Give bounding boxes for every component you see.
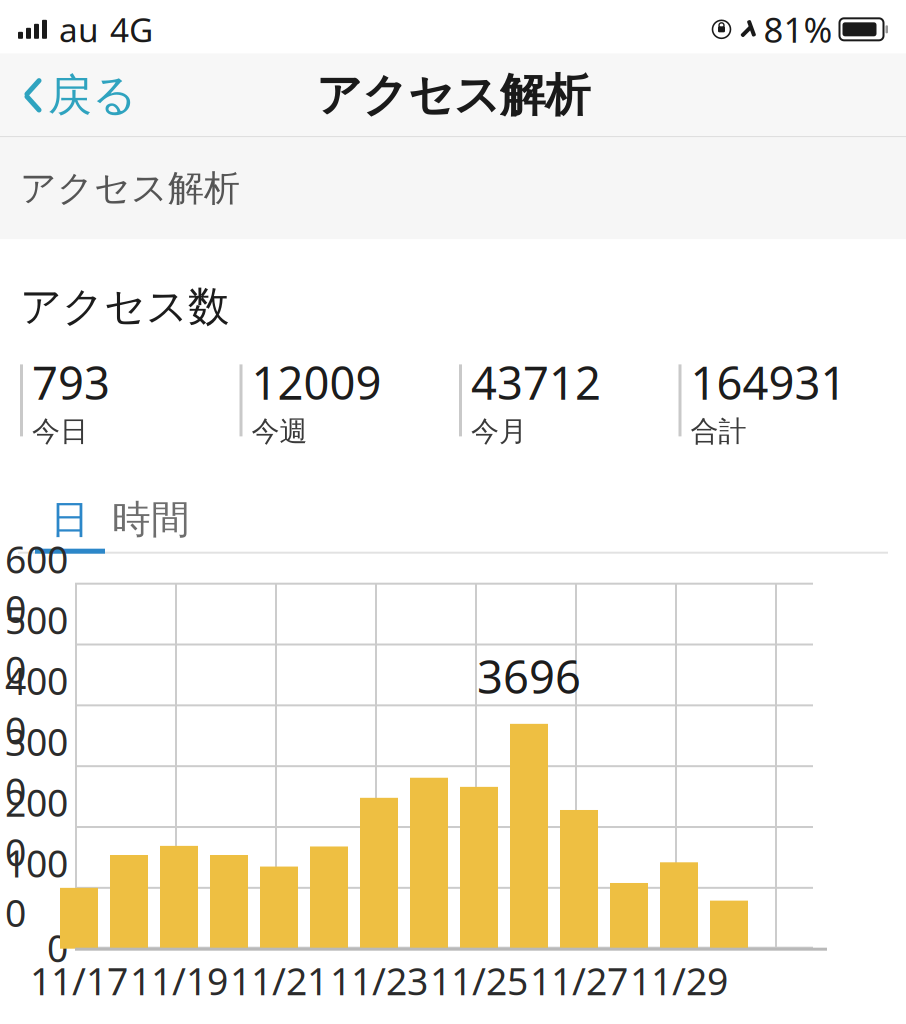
staticText: アクセス解析 — [316, 67, 590, 123]
staticText: 164931 — [690, 352, 846, 412]
staticText: 11/19 — [130, 956, 228, 1005]
staticText: 5000 — [5, 595, 68, 694]
staticText: 戻る — [48, 68, 137, 122]
staticText: 日 — [50, 496, 89, 543]
staticText: 今日 — [32, 414, 88, 449]
staticText: 6000 — [5, 534, 68, 633]
staticText: 11/23 — [330, 956, 428, 1005]
staticText: 12009 — [251, 352, 381, 412]
button[interactable]: 戻る — [0, 53, 151, 137]
staticText: 4000 — [5, 656, 68, 755]
staticText: 時間 — [112, 496, 190, 543]
staticText: 4G — [110, 7, 153, 51]
button[interactable]: 日 — [35, 491, 105, 549]
staticText: 今週 — [251, 414, 307, 449]
staticText: 11/17 — [30, 956, 128, 1005]
staticText: 3696 — [477, 646, 581, 706]
staticText: 今月 — [471, 414, 527, 449]
staticText: 11/25 — [430, 956, 528, 1005]
staticText: 0 — [47, 923, 68, 972]
staticText: 2000 — [5, 777, 68, 877]
staticText: アクセス解析 — [20, 166, 240, 210]
staticText: 合計 — [690, 414, 746, 449]
staticText: 3000 — [5, 717, 68, 816]
staticText: au — [59, 7, 99, 51]
button[interactable]: 時間 — [105, 491, 197, 549]
staticText: 81% — [763, 6, 832, 52]
staticText: 11/21 — [230, 956, 328, 1005]
staticText: 11/29 — [630, 956, 728, 1005]
staticText: 11/27 — [530, 956, 628, 1005]
staticText: 43712 — [471, 352, 601, 412]
staticText: 793 — [32, 352, 110, 412]
staticText: アクセス数 — [20, 281, 229, 332]
staticText: 1000 — [5, 838, 68, 937]
